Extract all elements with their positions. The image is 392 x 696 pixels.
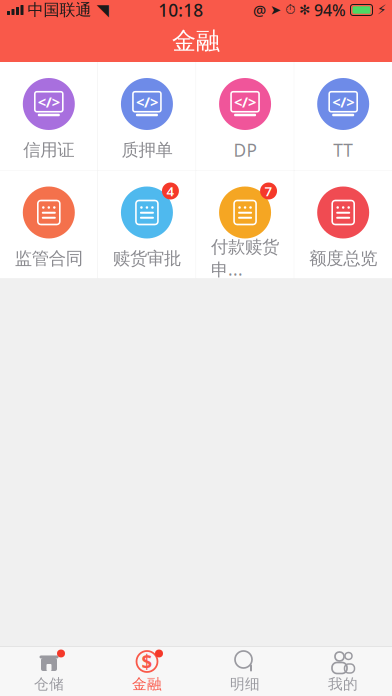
button[interactable]: $: [98, 647, 196, 696]
staticText: DP: [234, 138, 257, 161]
staticText: 额度总览: [309, 248, 377, 269]
button[interactable]: 额度总览: [294, 170, 392, 278]
staticText: 明细: [230, 675, 260, 693]
button[interactable]: 仓储: [0, 647, 98, 696]
staticText: 质押单: [121, 139, 172, 161]
staticText: 仓储: [34, 675, 64, 693]
staticText: </>: [38, 92, 60, 111]
staticText: 7: [265, 182, 273, 200]
button[interactable]: 我的: [294, 647, 392, 696]
staticText: </>: [136, 92, 158, 111]
staticText: 中国联通: [27, 0, 91, 20]
button[interactable]: 监管合同: [0, 170, 98, 278]
button[interactable]: 4: [98, 170, 196, 278]
staticText: TT: [333, 138, 353, 161]
button[interactable]: 7: [196, 170, 294, 278]
button[interactable]: </>: [196, 62, 294, 170]
staticText: </>: [332, 92, 354, 111]
staticText: 我的: [328, 675, 358, 693]
button[interactable]: </>: [294, 62, 392, 170]
button[interactable]: </>: [98, 62, 196, 170]
staticText: ⚡︎: [377, 2, 386, 17]
staticText: 10:18: [158, 0, 203, 21]
staticText: ➤: [270, 2, 281, 17]
button[interactable]: </>: [0, 62, 98, 170]
staticText: 监管合同: [15, 248, 83, 269]
staticText: 金融: [172, 26, 220, 56]
staticText: ✻: [299, 2, 310, 17]
staticText: </>: [234, 92, 256, 111]
staticText: ⏱: [285, 3, 295, 16]
staticText: 94%: [314, 0, 346, 21]
staticText: 4: [166, 182, 174, 200]
staticText: 金融: [132, 675, 162, 693]
staticText: 赎货审批: [113, 248, 181, 269]
staticText: @: [253, 0, 266, 20]
staticText: 付款赎货申...: [211, 236, 279, 281]
staticText: 信用证: [23, 139, 74, 161]
button[interactable]: 明细: [196, 647, 294, 696]
staticText: ◥: [96, 1, 108, 19]
staticText: $: [141, 649, 152, 674]
